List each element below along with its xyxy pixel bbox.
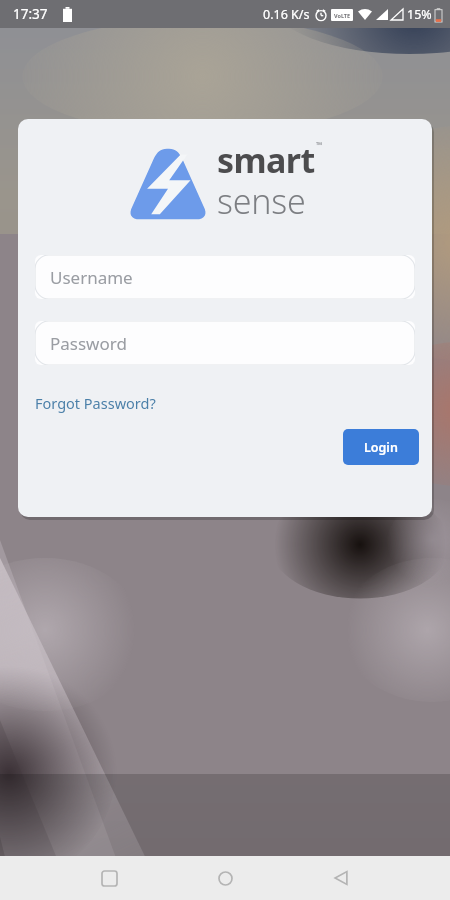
button[interactable]: Home (203, 856, 247, 900)
button[interactable]: Username (35, 255, 415, 299)
button[interactable]: Back (319, 856, 363, 900)
staticText: Username (50, 266, 133, 289)
button[interactable]: Login (343, 429, 419, 465)
staticText: 15% (407, 6, 432, 23)
staticText: smart (217, 137, 315, 183)
staticText: Login (364, 439, 398, 456)
staticText: ™ (316, 139, 323, 150)
staticText: Password (50, 332, 127, 355)
staticText: 0.16 K/s (263, 6, 310, 23)
button[interactable]: Recent apps (87, 856, 131, 900)
button[interactable]: Password (35, 321, 415, 365)
button[interactable]: Forgot Password? (35, 391, 156, 415)
staticText: 17:37 (13, 5, 48, 23)
staticText: VoLTE (334, 12, 351, 19)
staticText: Forgot Password? (35, 393, 156, 413)
staticText: sense (217, 178, 306, 224)
